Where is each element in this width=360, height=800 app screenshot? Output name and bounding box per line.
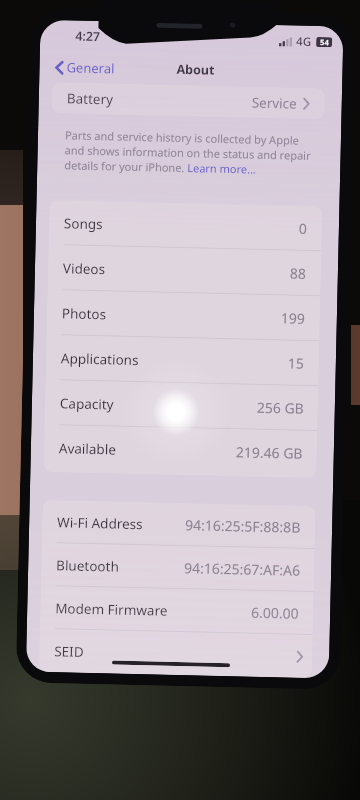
staticText: 199 (281, 308, 306, 328)
staticText: Videos (63, 259, 106, 278)
button[interactable]: Wi-Fi Address (42, 500, 316, 549)
button[interactable]: Learn more... (187, 160, 256, 177)
staticText: 54 (320, 37, 329, 47)
staticText: 256 GB (257, 398, 304, 418)
staticText: 0 (299, 219, 308, 238)
staticText: Capacity (60, 394, 114, 413)
staticText: Battery (67, 89, 114, 108)
staticText: details for your iPhone. (64, 157, 187, 175)
staticText: 15 (288, 353, 305, 373)
staticText: Parts and service history is collected b… (65, 127, 299, 148)
staticText: General (66, 58, 115, 77)
button[interactable]: Bluetooth (41, 543, 315, 592)
button[interactable]: Songs (48, 200, 322, 251)
staticText: 88 (290, 263, 307, 283)
button[interactable]: SEID (39, 629, 313, 678)
staticText: Songs (64, 214, 103, 233)
staticText: SEID (54, 642, 84, 661)
button[interactable]: Videos (47, 245, 321, 296)
other: More (296, 651, 303, 663)
staticText: Bluetooth (56, 556, 119, 576)
staticText: and shows information on the status and … (64, 142, 311, 163)
staticText: 219.46 GB (236, 442, 303, 463)
button[interactable]: Photos (46, 290, 320, 341)
button[interactable]: Capacity (44, 380, 318, 431)
staticText: 4:27 (75, 27, 100, 45)
staticText: Available (59, 439, 116, 459)
staticText: Modem Firmware (55, 599, 168, 620)
staticText: Wi-Fi Address (57, 513, 143, 533)
staticText: Applications (61, 349, 139, 369)
staticText: Photos (62, 304, 107, 323)
staticText: Service (252, 94, 298, 113)
button[interactable]: Available (43, 425, 317, 476)
staticText: 4G (296, 33, 311, 50)
staticText: About (176, 61, 215, 79)
staticText: 94:16:25:67:AF:A6 (184, 558, 300, 580)
button[interactable]: Battery (51, 82, 325, 119)
staticText: 6.00.00 (251, 603, 299, 623)
button[interactable]: Modem Firmware (40, 586, 314, 635)
button[interactable]: Applications (45, 335, 319, 386)
staticText: 94:16:25:5F:88:8B (185, 515, 301, 537)
button[interactable]: General (55, 58, 115, 77)
